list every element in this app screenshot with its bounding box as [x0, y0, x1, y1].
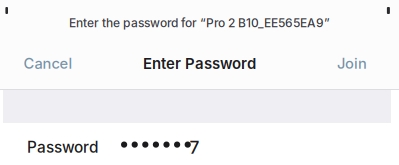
staticText: Enter Password [143, 54, 256, 73]
staticText: Password [27, 138, 98, 157]
button[interactable]: Join [323, 43, 381, 83]
button[interactable]: Password [0, 123, 399, 165]
staticText: Cancel [23, 55, 72, 72]
button[interactable]: Cancel [11, 43, 85, 83]
staticText: Enter the password for “Pro 2 B10_EE565E… [69, 16, 330, 30]
staticText: 7 [189, 137, 199, 158]
staticText: Join [337, 55, 367, 72]
